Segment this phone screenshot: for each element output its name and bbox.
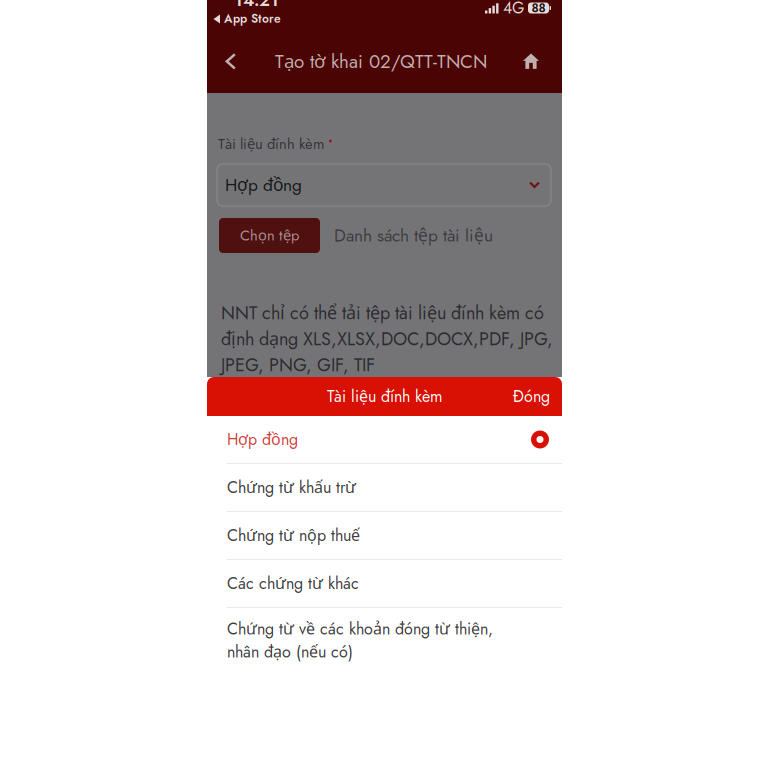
staticText: Đóng bbox=[513, 385, 550, 408]
button[interactable]: Hợp đồng bbox=[207, 416, 562, 463]
staticText: Tài liệu đính kèm bbox=[218, 133, 324, 155]
button[interactable]: Home bbox=[513, 32, 549, 90]
staticText: Hợp đồng bbox=[225, 172, 302, 197]
button[interactable]: Back bbox=[213, 32, 249, 90]
staticText: Tạo tờ khai 02/QTT-TNCN bbox=[275, 48, 487, 75]
staticText: Tài liệu đính kèm bbox=[327, 385, 442, 408]
staticText: 88 bbox=[531, 0, 545, 17]
staticText: NNT chỉ có thể tải tệp tài liệu đính kèm… bbox=[221, 300, 553, 378]
staticText: App Store bbox=[224, 10, 281, 27]
staticText: Chứng từ nộp thuế bbox=[227, 524, 360, 547]
staticText: Chứng từ khấu trừ bbox=[227, 476, 356, 499]
button[interactable]: Chứng từ nộp thuế bbox=[207, 512, 562, 559]
staticText: Danh sách tệp tài liệu bbox=[334, 223, 493, 248]
staticText: Chọn tệp bbox=[240, 225, 299, 246]
button[interactable]: Chứng từ khấu trừ bbox=[207, 464, 562, 511]
staticText: Hợp đồng bbox=[227, 428, 298, 451]
staticText: Các chứng từ khác bbox=[227, 572, 359, 595]
staticText: 14:21 bbox=[234, 0, 279, 12]
staticText: Chứng từ về các khoản đóng từ thiện, nhâ… bbox=[227, 617, 493, 664]
button[interactable]: Chứng từ về các khoản đóng từ thiện, nhâ… bbox=[207, 608, 562, 673]
button[interactable]: Chọn tệp bbox=[219, 218, 320, 253]
staticText: 4G bbox=[503, 0, 524, 19]
button[interactable]: Đóng bbox=[506, 377, 557, 416]
button[interactable]: Hợp đồng bbox=[217, 164, 551, 206]
button[interactable]: Các chứng từ khác bbox=[207, 560, 562, 607]
